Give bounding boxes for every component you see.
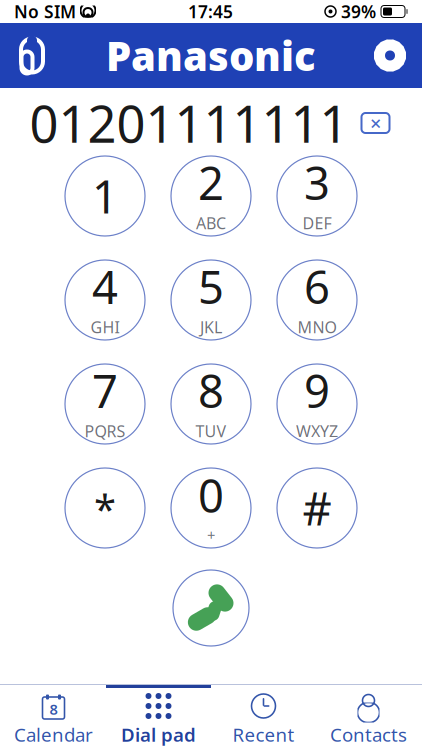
- button[interactable]: 7: [58, 364, 152, 444]
- staticText: +: [207, 525, 215, 545]
- staticText: 2: [198, 152, 224, 212]
- button[interactable]: *: [58, 468, 152, 548]
- staticText: Contacts: [330, 722, 407, 747]
- button[interactable]: 4: [58, 260, 152, 340]
- staticText: PQRS: [84, 420, 125, 442]
- staticText: WXYZ: [296, 420, 338, 442]
- staticText: 5: [198, 256, 224, 316]
- staticText: JKL: [200, 316, 222, 338]
- button[interactable]: Settings: [358, 23, 422, 88]
- button[interactable]: Contacts: [316, 685, 421, 749]
- staticText: 17:45: [188, 0, 233, 23]
- staticText: 01201111111: [29, 89, 348, 157]
- button[interactable]: Call: [173, 570, 249, 646]
- staticText: 4: [92, 256, 118, 316]
- button[interactable]: #: [270, 468, 364, 548]
- button[interactable]: 8: [164, 364, 258, 444]
- button[interactable]: Recent: [211, 685, 316, 749]
- staticText: 9: [304, 360, 330, 420]
- staticText: *: [94, 481, 116, 534]
- button[interactable]: 6: [270, 260, 364, 340]
- staticText: TUV: [195, 420, 226, 442]
- button[interactable]: 2: [164, 156, 258, 236]
- button[interactable]: 5: [164, 260, 258, 340]
- button[interactable]: 3: [270, 156, 364, 236]
- staticText: 8: [198, 360, 224, 420]
- staticText: 6: [304, 256, 330, 316]
- button[interactable]: 9: [270, 364, 364, 444]
- staticText: Dial pad: [121, 722, 196, 747]
- staticText: Panasonic: [106, 29, 316, 82]
- button[interactable]: Link: [0, 23, 64, 88]
- staticText: ABC: [196, 212, 226, 234]
- staticText: GHI: [90, 316, 119, 338]
- button[interactable]: Delete: [358, 112, 392, 134]
- staticText: MNO: [297, 316, 336, 338]
- button[interactable]: Dial pad: [106, 685, 211, 749]
- button[interactable]: 0: [164, 468, 258, 548]
- staticText: No SIM: [14, 0, 76, 23]
- staticText: Calendar: [14, 722, 93, 747]
- button[interactable]: 8: [1, 685, 106, 749]
- staticText: DEF: [302, 212, 331, 234]
- staticText: 3: [304, 152, 330, 212]
- staticText: 1: [92, 166, 118, 226]
- button[interactable]: 1: [58, 156, 152, 236]
- staticText: 8: [49, 699, 57, 719]
- staticText: #: [302, 478, 331, 538]
- staticText: 0: [198, 465, 224, 525]
- staticText: 7: [92, 360, 118, 420]
- staticText: Recent: [232, 722, 294, 747]
- staticText: 39%: [341, 0, 376, 23]
- staticText: ×: [370, 110, 381, 136]
